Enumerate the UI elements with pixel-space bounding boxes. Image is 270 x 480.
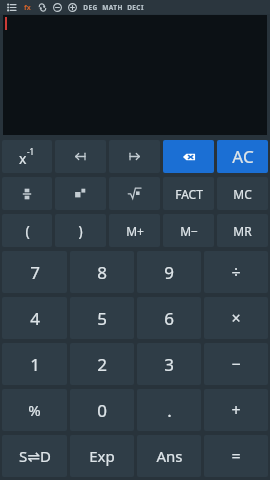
staticText: DEG — [83, 3, 98, 12]
button[interactable]: Move left — [55, 140, 106, 173]
button[interactable]: Exp — [70, 435, 134, 477]
staticText: + — [231, 399, 241, 421]
button[interactable]: Inverse — [2, 140, 52, 173]
button[interactable]: 7 — [2, 251, 67, 293]
staticText: fx — [24, 3, 31, 13]
staticText: 8 — [97, 261, 107, 284]
button[interactable]: M+ — [109, 214, 160, 247]
button[interactable]: MC — [217, 177, 268, 210]
button[interactable]: Square root — [109, 177, 160, 210]
button[interactable]: × — [204, 297, 268, 339]
button[interactable]: 8 — [70, 251, 134, 293]
staticText: 9 — [164, 261, 174, 284]
staticText: x — [19, 149, 27, 168]
staticText: 1 — [30, 353, 40, 376]
staticText: ) — [78, 221, 83, 240]
staticText: ÷ — [231, 261, 241, 283]
button[interactable]: Zoom in — [66, 1, 79, 14]
staticText: . — [167, 399, 172, 422]
button[interactable]: + — [204, 389, 268, 431]
staticText: MR — [233, 223, 252, 239]
staticText: 7 — [30, 261, 40, 284]
button[interactable]: = — [204, 435, 268, 477]
button[interactable]: . — [137, 389, 201, 431]
staticText: 4 — [30, 307, 40, 330]
button[interactable]: Ans — [137, 435, 201, 477]
button[interactable]: Backspace — [163, 140, 214, 173]
button[interactable]: Menu — [4, 0, 18, 14]
button[interactable]: Fraction — [2, 177, 52, 210]
button[interactable] — [3, 15, 267, 135]
button[interactable]: Refresh — [36, 1, 49, 14]
staticText: 2 — [97, 353, 107, 376]
button[interactable]: Standard decimal toggle — [2, 435, 67, 477]
button[interactable]: − — [204, 343, 268, 385]
button[interactable]: M− — [163, 214, 214, 247]
staticText: M+ — [126, 223, 144, 239]
staticText: ( — [25, 221, 30, 240]
staticText: × — [231, 307, 241, 329]
button[interactable]: Functions — [21, 1, 34, 14]
button[interactable]: 3 — [137, 343, 201, 385]
button[interactable]: 5 — [70, 297, 134, 339]
staticText: MATH — [102, 3, 123, 12]
staticText: = — [231, 445, 241, 467]
staticText: AC — [232, 145, 254, 168]
staticText: -1 — [27, 146, 35, 157]
button[interactable]: 2 — [70, 343, 134, 385]
staticText: M− — [180, 223, 198, 239]
staticText: 6 — [164, 307, 174, 330]
staticText: 0 — [97, 399, 107, 422]
button[interactable]: % — [2, 389, 67, 431]
button[interactable]: 9 — [137, 251, 201, 293]
button[interactable]: 0 — [70, 389, 134, 431]
staticText: S⇌D — [19, 446, 51, 466]
button[interactable]: 1 — [2, 343, 67, 385]
button[interactable]: Move right — [109, 140, 160, 173]
staticText: MC — [233, 186, 252, 202]
staticText: % — [28, 400, 41, 420]
staticText: FACT — [175, 186, 203, 202]
button[interactable]: 4 — [2, 297, 67, 339]
button[interactable]: ) — [55, 214, 106, 247]
button[interactable]: ÷ — [204, 251, 268, 293]
button[interactable]: MR — [217, 214, 268, 247]
staticText: DECI — [127, 3, 144, 12]
button[interactable]: FACT — [163, 177, 214, 210]
button[interactable]: Zoom out — [51, 1, 64, 14]
staticText: 5 — [97, 307, 107, 330]
staticText: Ans — [156, 446, 183, 466]
staticText: 3 — [164, 353, 174, 376]
button[interactable]: Power — [55, 177, 106, 210]
staticText: Exp — [89, 446, 115, 466]
staticText: − — [231, 353, 241, 375]
button[interactable]: AC — [217, 140, 268, 173]
button[interactable]: 6 — [137, 297, 201, 339]
button[interactable]: ( — [2, 214, 52, 247]
